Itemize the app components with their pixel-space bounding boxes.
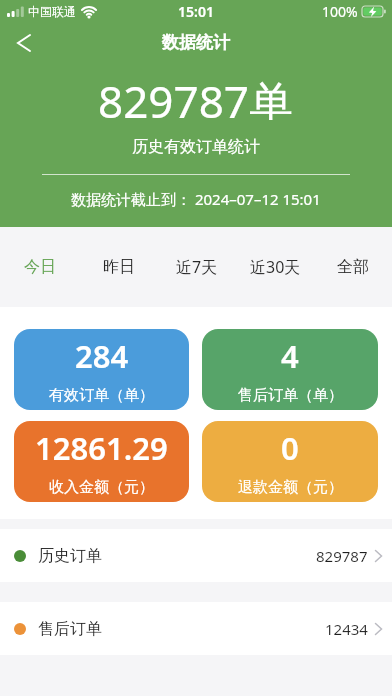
button[interactable]: 12861.29 xyxy=(14,421,189,502)
staticText: 历史订单 xyxy=(38,546,102,566)
staticText: 近7天 xyxy=(176,256,218,278)
staticText: 退款金额（元） xyxy=(238,478,343,497)
button[interactable]: 全部 xyxy=(314,227,392,307)
staticText: 15:01 xyxy=(178,2,214,21)
staticText: 数据统计截止到： 2024–07–12 15:01 xyxy=(71,189,321,209)
button[interactable] xyxy=(8,27,40,59)
button[interactable]: 今日 xyxy=(0,227,79,307)
button[interactable]: 历史订单 xyxy=(0,529,392,582)
staticText: 今日 xyxy=(24,257,56,277)
staticText: 4 xyxy=(281,335,299,377)
staticText: 数据统计 xyxy=(162,32,230,53)
staticText: 有效订单（单） xyxy=(49,386,154,405)
button[interactable]: 近30天 xyxy=(236,227,314,307)
staticText: 829787单 xyxy=(98,71,294,120)
staticText: 100% xyxy=(322,2,358,21)
button[interactable]: 售后订单 xyxy=(0,602,392,655)
staticText: 历史有效订单统计 xyxy=(132,137,260,157)
staticText: 12861.29 xyxy=(35,427,168,469)
button[interactable]: 284 xyxy=(14,329,189,410)
staticText: 售后订单（单） xyxy=(238,386,343,405)
staticText: 12434 xyxy=(325,619,368,639)
button[interactable]: 4 xyxy=(202,329,378,410)
staticText: 0 xyxy=(281,427,299,469)
staticText: 284 xyxy=(75,335,129,377)
button[interactable]: 近7天 xyxy=(158,227,236,307)
staticText: 昨日 xyxy=(103,257,135,277)
button[interactable]: 昨日 xyxy=(79,227,158,307)
staticText: 收入金额（元） xyxy=(49,478,154,497)
staticText: 829787 xyxy=(316,546,368,566)
staticText: 近30天 xyxy=(250,256,301,278)
staticText: 售后订单 xyxy=(38,619,102,639)
button[interactable]: 0 xyxy=(202,421,378,502)
staticText: 中国联通 xyxy=(28,4,76,19)
staticText: 全部 xyxy=(337,257,369,277)
